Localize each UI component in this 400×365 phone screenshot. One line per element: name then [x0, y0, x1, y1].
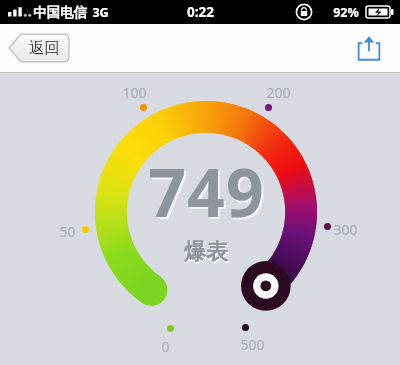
button[interactable]: Share [355, 34, 383, 62]
button[interactable]: 返回 [8, 33, 70, 63]
staticText: 爆表 [185, 240, 229, 268]
staticText: 3G [92, 4, 109, 21]
staticText: 200 [266, 83, 291, 102]
staticText: 100 [122, 83, 147, 102]
staticText: 300 [333, 220, 358, 239]
staticText: 0 [161, 337, 170, 356]
staticText: 92% [333, 4, 359, 21]
staticText: 返回 [29, 38, 60, 58]
staticText: 50 [59, 222, 76, 241]
staticText: 749 [148, 146, 265, 236]
staticText: 500 [240, 335, 265, 354]
staticText: 中国电信 [33, 4, 87, 21]
staticText: 749 [150, 148, 267, 238]
staticText: 0:22 [187, 3, 214, 21]
staticText: 爆表 [184, 238, 228, 266]
